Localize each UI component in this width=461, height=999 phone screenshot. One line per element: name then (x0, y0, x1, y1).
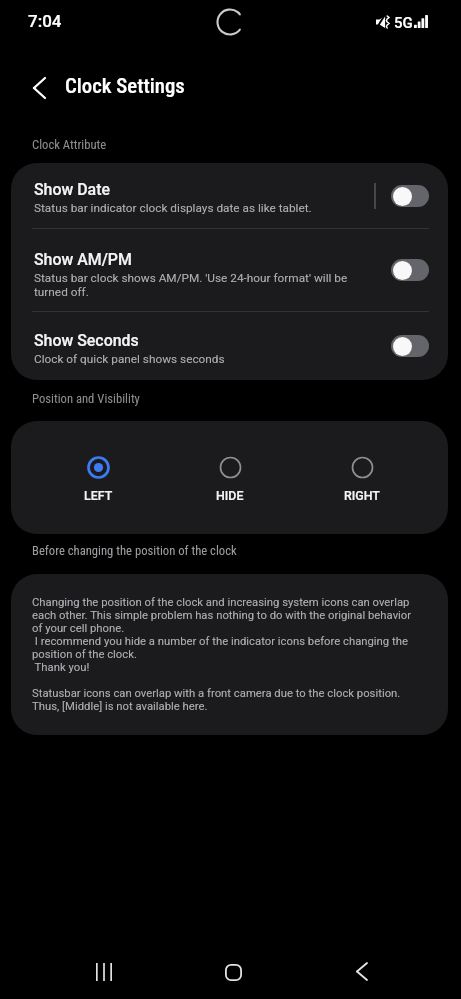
staticText: Clock Settings (65, 74, 185, 98)
button[interactable]: Show Seconds (11, 312, 448, 380)
staticText: RIGHT (344, 488, 380, 503)
button[interactable]: Show Date (11, 163, 448, 228)
button[interactable]: Recent apps (84, 944, 124, 999)
staticText: Changing the position of the clock and i… (32, 595, 412, 712)
staticText: Show Seconds (34, 331, 139, 350)
staticText: Show AM/PM (34, 250, 132, 269)
staticText: HIDE (216, 488, 244, 503)
staticText: Status bar clock shows AM/PM. 'Use 24-ho… (34, 271, 374, 299)
button[interactable]: Home (213, 952, 253, 992)
button[interactable]: Navigate up (17, 66, 61, 110)
staticText: Show Date (34, 180, 110, 199)
staticText: Clock of quick panel shows seconds (34, 352, 374, 366)
staticText: Position and Visibility (32, 391, 140, 406)
staticText: 5G (394, 14, 413, 32)
staticText: Status bar indicator clock displays date… (34, 201, 374, 215)
button[interactable]: RIGHT (344, 456, 380, 503)
button[interactable]: HIDE (216, 456, 244, 503)
staticText: 7:04 (28, 11, 62, 31)
button[interactable]: Show AM/PM (11, 229, 448, 311)
staticText: LEFT (84, 488, 113, 503)
staticText: Before changing the position of the cloc… (32, 543, 237, 558)
button[interactable]: Show AM/PM (391, 259, 429, 281)
button[interactable]: LEFT (84, 456, 113, 503)
button[interactable]: Back (342, 944, 382, 999)
button[interactable]: Show Seconds (391, 335, 429, 357)
staticText: Clock Attribute (32, 137, 107, 152)
button[interactable]: Show Date (391, 185, 429, 207)
